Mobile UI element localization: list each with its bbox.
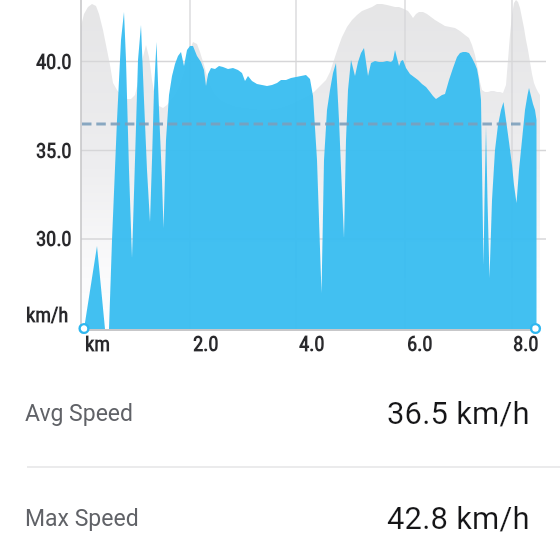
staticText: 42.8 km/h [387, 500, 530, 536]
staticText: 6.0 [407, 332, 433, 357]
staticText: Max Speed [25, 505, 139, 532]
staticText: 8.0 [513, 332, 539, 357]
staticText: Avg Speed [25, 400, 133, 427]
staticText: 40.0 [36, 50, 72, 75]
staticText: km/h [26, 303, 69, 328]
staticText: 30.0 [36, 227, 72, 252]
staticText: 36.5 km/h [387, 395, 530, 431]
staticText: 2.0 [193, 332, 219, 357]
button[interactable]: Avg Speed [0, 385, 560, 441]
staticText: 35.0 [36, 139, 72, 164]
button[interactable]: Max Speed [0, 490, 560, 546]
staticText: km [85, 332, 110, 357]
staticText: 4.0 [299, 332, 325, 357]
